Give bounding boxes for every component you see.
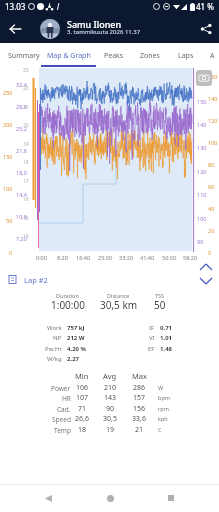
button[interactable]: Lap #2	[8, 272, 219, 287]
staticText: 15	[23, 215, 29, 222]
staticText: Samu Ilonen	[67, 18, 122, 30]
staticText: 25:00	[98, 254, 113, 261]
staticText: W	[158, 384, 164, 391]
staticText: 210	[104, 383, 117, 393]
staticText: 107	[76, 393, 89, 403]
staticText: 143	[104, 393, 117, 403]
staticText: 1,01	[160, 334, 173, 342]
button[interactable]: Home	[96, 484, 124, 512]
staticText: 21	[135, 425, 144, 435]
button[interactable]: Zones	[136, 43, 163, 68]
staticText: 18,0	[16, 169, 27, 176]
staticText: Duration	[56, 292, 79, 299]
staticText: 14,4	[16, 191, 27, 198]
staticText: Map & Graph	[47, 51, 91, 61]
staticText: 26,6	[75, 414, 89, 424]
staticText: 20	[208, 227, 215, 234]
staticText: Distance	[107, 292, 130, 299]
staticText: 58:20	[183, 254, 198, 261]
staticText: 80	[208, 161, 215, 168]
staticText: 8:20	[57, 254, 68, 261]
button[interactable]: Share	[193, 16, 218, 41]
staticText: 33,6	[132, 414, 146, 424]
staticText: 22	[23, 85, 29, 92]
staticText: 0	[9, 249, 13, 256]
staticText: 23	[23, 67, 29, 74]
staticText: 90	[106, 404, 115, 414]
staticText: 4,20 %	[67, 345, 86, 353]
staticText: 200	[3, 121, 13, 128]
staticText: C	[158, 426, 162, 433]
staticText: Cad.	[57, 405, 71, 414]
staticText: 32,4	[16, 81, 27, 88]
staticText: 106	[76, 383, 89, 393]
staticText: Temp	[54, 426, 71, 435]
staticText: Speed	[52, 415, 71, 424]
staticText: TSS	[155, 292, 165, 299]
staticText: 20	[23, 122, 29, 129]
staticText: NP	[53, 334, 62, 342]
button[interactable]: A	[205, 43, 219, 68]
staticText: IF	[149, 324, 155, 332]
staticText: 0	[208, 249, 212, 256]
staticText: 50:00	[162, 254, 177, 261]
staticText: 100	[208, 139, 218, 146]
staticText: Peaks	[104, 51, 124, 61]
button[interactable]: Back	[2, 16, 27, 41]
staticText: 0,71	[160, 324, 173, 332]
button[interactable]: Camera	[196, 70, 212, 86]
staticText: 16:40	[76, 254, 91, 261]
staticText: Work	[47, 324, 62, 332]
staticText: 90	[197, 238, 204, 245]
staticText: 160	[208, 73, 218, 80]
staticText: Summary	[8, 51, 40, 61]
staticText: 33:20	[119, 254, 134, 261]
staticText: 130	[197, 144, 207, 151]
staticText: 40	[208, 205, 215, 212]
staticText: 150	[3, 153, 13, 160]
staticText: 7,20	[16, 235, 27, 242]
staticText: 21,6	[16, 147, 27, 154]
button[interactable]: Map & Graph	[41, 43, 96, 68]
staticText: 140	[197, 121, 207, 128]
button[interactable]: Laps	[173, 43, 198, 68]
staticText: Power	[51, 384, 71, 393]
staticText: 0:00	[36, 254, 47, 261]
staticText: 16	[23, 196, 29, 203]
staticText: bpm	[158, 394, 170, 401]
staticText: Avg	[103, 371, 117, 381]
staticText: 100	[3, 185, 13, 192]
staticText: 3. tammikuuta 2026 11.37	[67, 28, 141, 36]
staticText: 156	[133, 404, 146, 414]
staticText: 1:00:00	[51, 298, 85, 312]
staticText: 50	[6, 217, 13, 224]
staticText: kph	[158, 415, 168, 422]
button[interactable]: Summary	[2, 43, 46, 68]
staticText: 28,8	[16, 103, 27, 110]
staticText: 250	[3, 89, 13, 96]
staticText: 30,5 km	[100, 298, 138, 312]
button[interactable]: Back	[34, 484, 62, 512]
button[interactable]: Recents	[157, 484, 185, 512]
staticText: Min	[75, 371, 89, 381]
staticText: 100	[197, 215, 207, 222]
staticText: rpm	[158, 405, 169, 412]
staticText: 13.03	[5, 1, 26, 12]
staticText: W/kg	[47, 355, 62, 363]
button[interactable]: Next lap	[198, 262, 214, 290]
staticText: 157	[133, 393, 146, 403]
staticText: Laps	[178, 51, 194, 61]
staticText: 25,2	[16, 125, 27, 132]
staticText: 19	[23, 141, 29, 148]
staticText: 21	[23, 104, 29, 111]
staticText: 120	[197, 168, 207, 175]
staticText: 140	[208, 95, 218, 102]
staticText: 30,5	[103, 414, 117, 424]
staticText: 1,48	[160, 345, 173, 353]
staticText: 110	[197, 191, 207, 198]
staticText: 50	[154, 298, 166, 312]
staticText: 19	[106, 425, 115, 435]
staticText: 41 %	[196, 1, 214, 12]
button[interactable]: Peaks	[100, 43, 127, 68]
staticText: 757 kJ	[67, 324, 85, 332]
